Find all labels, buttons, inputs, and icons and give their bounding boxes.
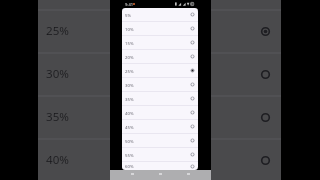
staticText: 25%	[125, 68, 134, 74]
button[interactable]: 50%	[122, 134, 198, 147]
staticText: 60%	[125, 163, 134, 169]
staticText: 15%	[125, 40, 134, 46]
button[interactable]: 5%	[122, 8, 198, 21]
button[interactable]: Back	[127, 170, 138, 177]
button[interactable]: 30%	[38, 53, 281, 96]
staticText: 5%	[125, 12, 132, 18]
staticText: 10%	[125, 26, 134, 32]
button[interactable]: 45%	[122, 120, 198, 133]
staticText: 40%	[125, 110, 134, 116]
staticText: 35%	[125, 96, 134, 102]
button[interactable]: 55%	[122, 148, 198, 161]
staticText: 9:41	[125, 2, 133, 7]
button[interactable]: 30%	[122, 78, 198, 91]
staticText: 30%	[46, 66, 69, 82]
staticText: 30%	[125, 82, 134, 88]
button[interactable]: 15%	[122, 36, 198, 49]
button[interactable]: 20%	[122, 50, 198, 63]
button[interactable]: 10%	[122, 22, 198, 35]
button[interactable]: 25%	[122, 64, 198, 77]
staticText: 20%	[125, 54, 134, 60]
button[interactable]: 60%	[122, 162, 198, 170]
button[interactable]: Recents	[183, 170, 194, 177]
staticText: 45%	[125, 124, 134, 130]
button[interactable]: 40%	[38, 139, 281, 180]
staticText: 55%	[125, 152, 134, 158]
button[interactable]: Home	[155, 170, 166, 177]
button[interactable]: 40%	[122, 106, 198, 119]
staticText: 40%	[46, 152, 69, 168]
button[interactable]: 35%	[122, 92, 198, 105]
staticText: 35%	[46, 109, 69, 125]
staticText: 50%	[125, 138, 134, 144]
button[interactable]: 25%	[38, 10, 281, 53]
button[interactable]: 35%	[38, 96, 281, 139]
staticText: 25%	[46, 23, 69, 39]
